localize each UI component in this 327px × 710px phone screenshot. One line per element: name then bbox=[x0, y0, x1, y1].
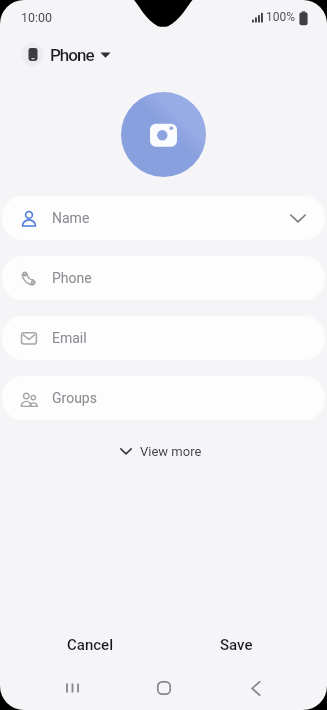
staticText: 10:00 bbox=[21, 10, 53, 25]
button[interactable] bbox=[44, 672, 100, 704]
button[interactable]: Name bbox=[2, 196, 325, 240]
staticText: Groups bbox=[52, 390, 97, 406]
button[interactable]: Save bbox=[163, 628, 310, 662]
staticText: View more bbox=[140, 444, 202, 459]
staticText: Name bbox=[52, 210, 90, 226]
button[interactable]: Email bbox=[2, 316, 325, 360]
staticText: Save bbox=[220, 636, 253, 654]
button[interactable] bbox=[121, 92, 206, 177]
button[interactable]: Phone bbox=[21, 43, 111, 66]
button[interactable]: Groups bbox=[2, 376, 325, 420]
staticText: Cancel bbox=[67, 636, 114, 654]
staticText: Email bbox=[52, 330, 87, 346]
staticText: 100% bbox=[266, 10, 296, 24]
button[interactable]: Cancel bbox=[17, 628, 163, 662]
button[interactable] bbox=[228, 672, 284, 704]
staticText: Phone bbox=[50, 45, 94, 65]
staticText: Phone bbox=[52, 270, 92, 286]
button[interactable]: View more bbox=[0, 440, 324, 462]
button[interactable] bbox=[136, 672, 192, 704]
button[interactable]: Phone bbox=[2, 256, 325, 300]
